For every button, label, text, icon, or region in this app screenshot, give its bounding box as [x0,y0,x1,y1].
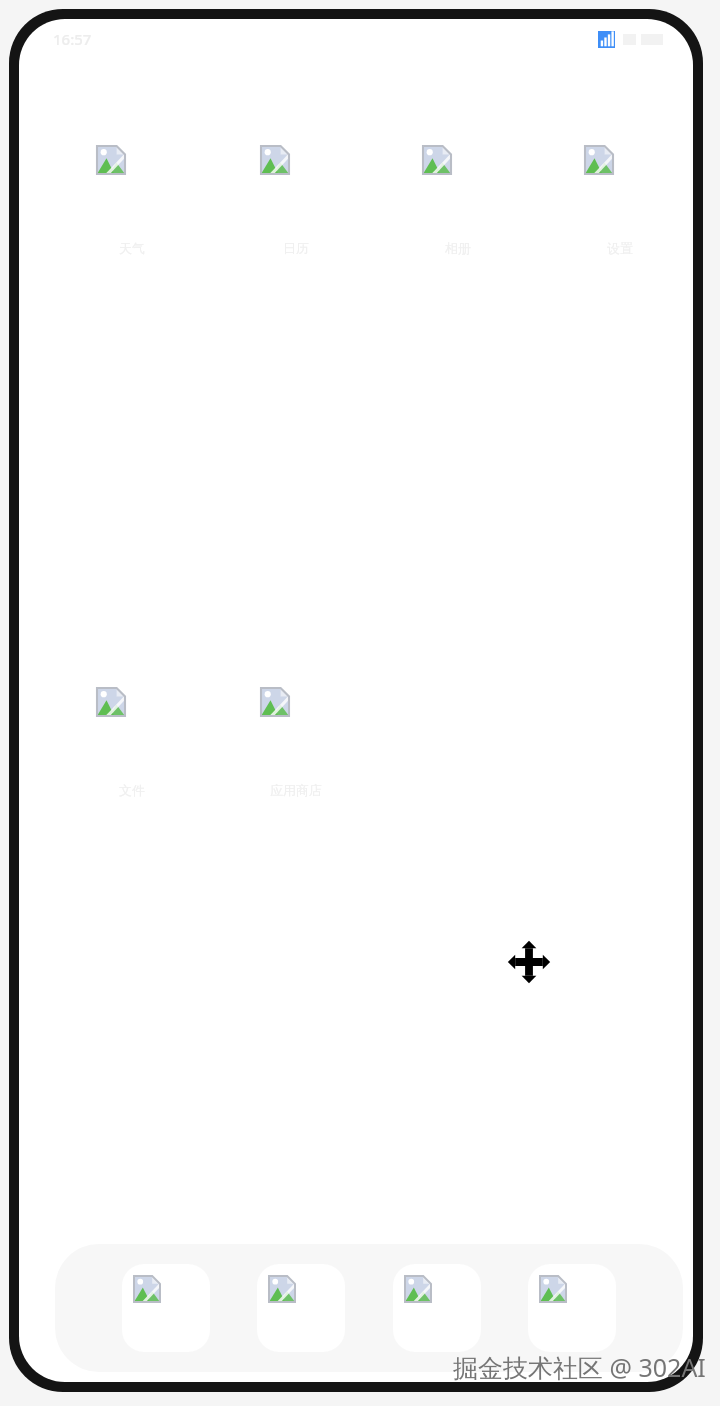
button[interactable]: Phone [122,1264,210,1352]
staticText: 文件 [83,782,181,798]
staticText: 相册 [409,240,507,256]
staticText: 应用商店 [247,782,345,798]
button[interactable]: 天气 [83,132,181,230]
other: Signal [598,31,615,48]
button[interactable]: 文件 [83,674,181,772]
button[interactable]: 相册 [409,132,507,230]
staticText: 天气 [83,240,181,256]
button[interactable]: 应用商店 [247,674,345,772]
staticText: 掘金技术社区 @ 302AI [453,1350,706,1384]
staticText: 设置 [571,240,669,256]
button[interactable]: Messages [257,1264,345,1352]
staticText: 日历 [247,240,345,256]
staticText: 16:57 [53,29,92,49]
button[interactable]: Browser [393,1264,481,1352]
button[interactable]: 设置 [571,132,669,230]
button[interactable]: 日历 [247,132,345,230]
button[interactable]: Camera [528,1264,616,1352]
